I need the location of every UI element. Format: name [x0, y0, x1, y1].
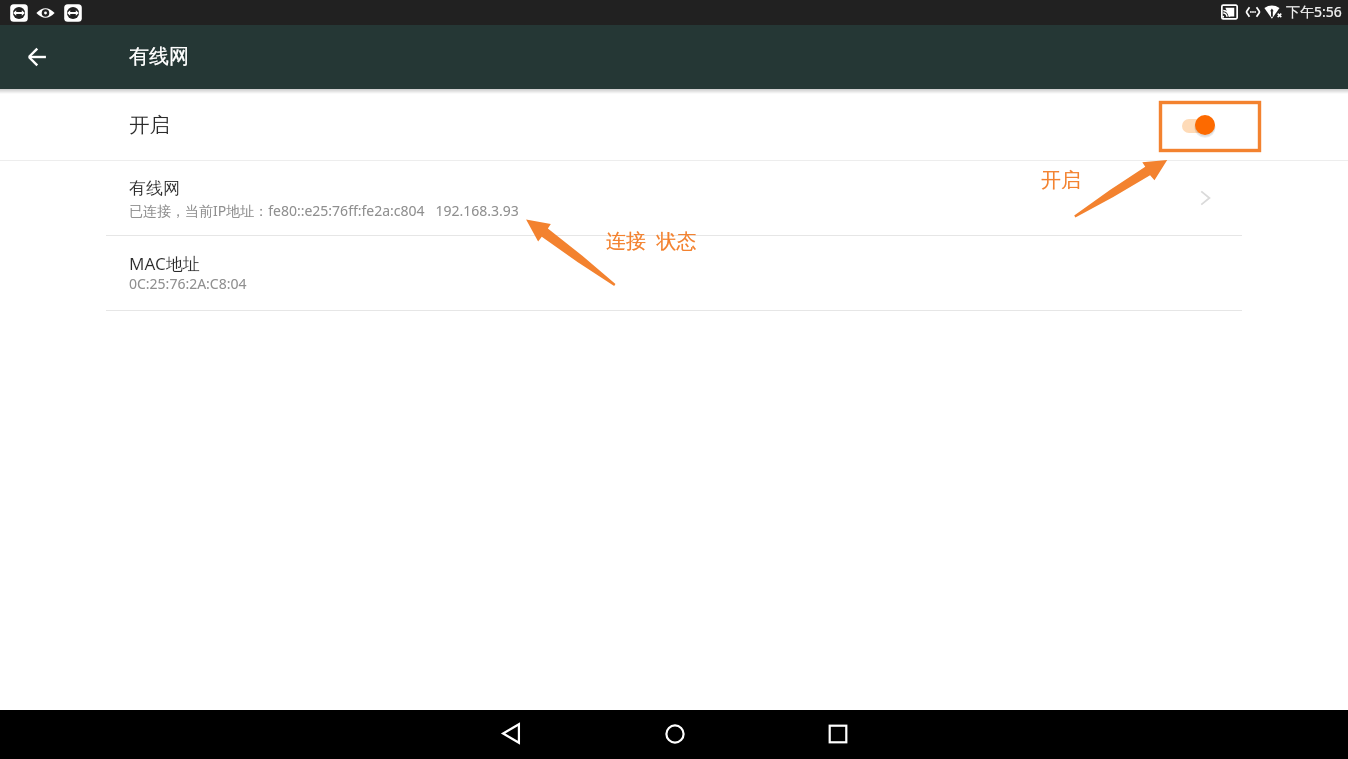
staticText: 已连接，当前IP地址：fe80::e25:76ff:fe2a:c804 192.… [129, 201, 519, 220]
button[interactable]: Resize [63, 3, 83, 23]
other: Wi-Fi off [1264, 4, 1282, 20]
button[interactable]: Resize [9, 3, 29, 23]
button[interactable]: MAC地址 [0, 236, 1348, 310]
other: Cast screen [1221, 4, 1238, 20]
staticText: 开启 [129, 112, 170, 138]
staticText: 连接 状态 [606, 227, 697, 254]
button[interactable]: 开启 [0, 89, 1348, 160]
staticText: 有线网 [129, 44, 189, 69]
staticText: 有线网 [129, 178, 180, 199]
button[interactable]: Back [26, 45, 50, 69]
other: More [1194, 187, 1216, 209]
button[interactable]: Back [438, 710, 583, 759]
staticText: 0C:25:76:2A:C8:04 [129, 274, 247, 293]
button[interactable]: Show [36, 3, 55, 23]
staticText: MAC地址 [129, 252, 200, 275]
button[interactable] [1178, 106, 1222, 138]
other: Ethernet connected [1245, 4, 1261, 20]
staticText: 下午5:56 [1286, 2, 1342, 21]
button[interactable]: Recents [765, 710, 910, 759]
button[interactable]: 有线网 [0, 161, 1348, 235]
button[interactable]: Home [602, 710, 747, 759]
staticText: 开启 [1041, 168, 1081, 193]
